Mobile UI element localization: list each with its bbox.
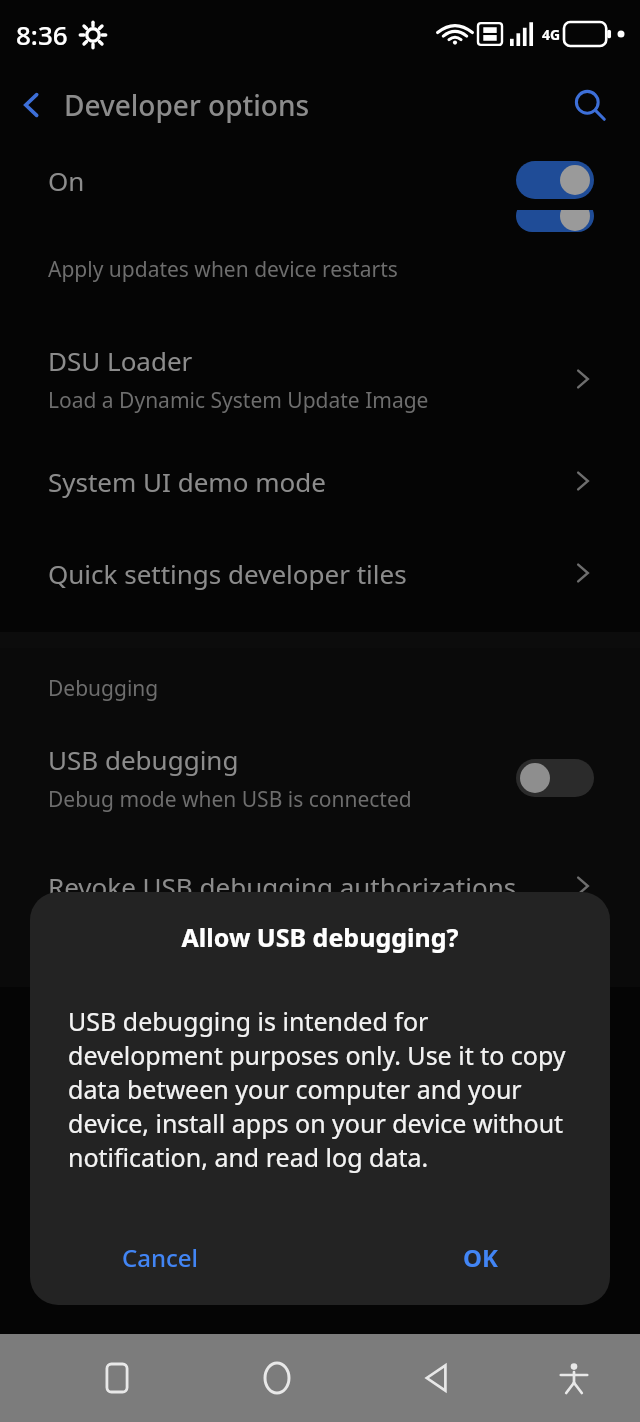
staticText: Apply updates when device restarts <box>48 255 398 284</box>
button[interactable]: Toggle on <box>516 161 594 199</box>
button[interactable]: Recent apps <box>84 1345 150 1411</box>
button[interactable]: Toggle off <box>516 759 594 797</box>
button[interactable]: OK <box>451 1231 510 1284</box>
staticText: USB debugging is intended for developmen… <box>68 1004 572 1174</box>
button[interactable]: Automatic system updates <box>0 218 640 300</box>
button[interactable]: Cancel <box>110 1231 211 1284</box>
button[interactable]: On <box>0 142 640 218</box>
button[interactable]: Accessibility <box>541 1345 607 1411</box>
button[interactable]: Back <box>0 73 64 137</box>
button[interactable]: System UI demo mode <box>0 450 640 512</box>
staticText: Debug mode when USB is connected <box>48 785 412 814</box>
button[interactable]: Revoke USB debugging authorizations <box>0 855 640 917</box>
staticText: USB debugging <box>48 742 239 777</box>
staticText: Revoke USB debugging authorizations <box>48 869 517 904</box>
button[interactable]: Home <box>244 1345 310 1411</box>
staticText: Cancel <box>122 1241 199 1274</box>
staticText: System UI demo mode <box>48 464 326 499</box>
button[interactable]: Back <box>404 1345 470 1411</box>
staticText: 4G <box>542 25 561 44</box>
staticText: Developer options <box>64 86 310 124</box>
staticText: Debugging <box>48 674 159 703</box>
staticText: OK <box>463 1241 498 1274</box>
staticText: Allow USB debugging? <box>30 920 610 954</box>
staticText: Load a Dynamic System Update Image <box>48 386 429 415</box>
button[interactable]: Quick settings developer tiles <box>0 542 640 604</box>
button[interactable]: DSU Loader <box>0 336 640 422</box>
button[interactable]: Search <box>562 77 618 133</box>
staticText: Quick settings developer tiles <box>48 556 407 591</box>
staticText: DSU Loader <box>48 343 193 378</box>
staticText: On <box>48 163 85 198</box>
staticText: 8:36 <box>16 17 68 52</box>
button[interactable]: USB debugging <box>0 735 640 821</box>
button[interactable]: Toggle on <box>516 210 594 232</box>
